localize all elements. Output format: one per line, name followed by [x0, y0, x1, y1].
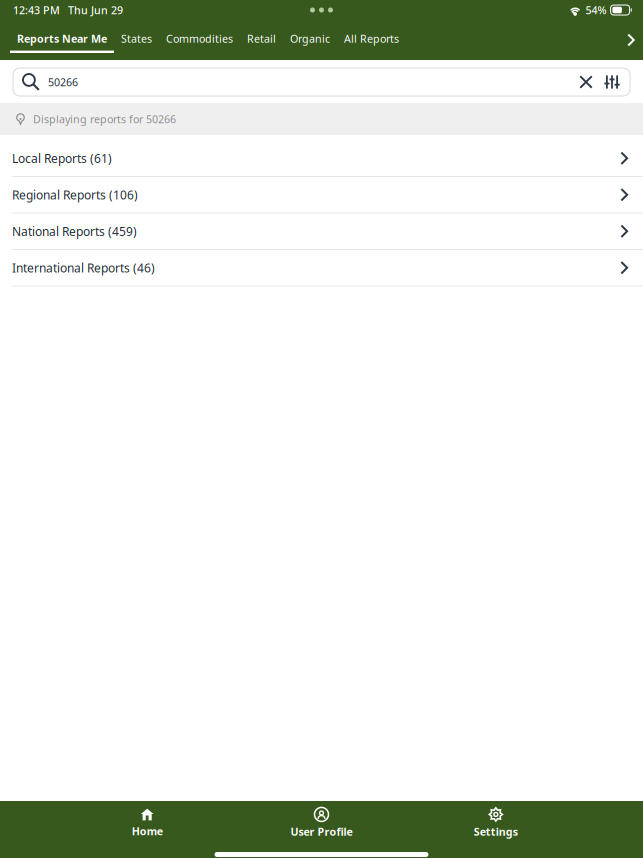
staticText: Regional Reports (106) — [12, 187, 138, 203]
button[interactable]: Settings — [409, 802, 583, 844]
button[interactable]: Clear search — [573, 68, 599, 96]
staticText: Organic — [290, 31, 330, 46]
button[interactable]: Retail — [240, 20, 283, 60]
button[interactable]: More tabs — [619, 20, 643, 60]
button[interactable]: Regional Reports (106) — [0, 177, 643, 213]
staticText: National Reports (459) — [12, 223, 137, 239]
button[interactable]: International Reports (46) — [0, 250, 643, 286]
staticText: 50266 — [48, 75, 78, 89]
staticText: 12:43 PM — [13, 3, 60, 17]
button[interactable]: Organic — [283, 20, 337, 60]
button[interactable]: Reports Near Me — [10, 20, 114, 60]
button[interactable]: All Reports — [337, 20, 406, 60]
button[interactable]: Local Reports (61) — [0, 140, 643, 177]
staticText: Local Reports (61) — [12, 150, 112, 166]
button[interactable]: Commodities — [159, 20, 240, 60]
staticText: States — [121, 31, 152, 46]
button[interactable]: National Reports (459) — [0, 213, 643, 250]
staticText: Retail — [247, 31, 276, 46]
staticText: Displaying reports for 50266 — [33, 112, 176, 126]
button[interactable]: Home — [60, 802, 234, 844]
staticText: Thu Jun 29 — [68, 3, 123, 17]
staticText: All Reports — [344, 31, 399, 46]
button[interactable]: User Profile — [234, 802, 409, 844]
staticText: User Profile — [290, 824, 352, 839]
staticText: Home — [132, 824, 163, 838]
staticText: Commodities — [166, 31, 233, 46]
button[interactable]: Filter — [599, 68, 625, 96]
staticText: 54% — [586, 3, 607, 17]
staticText: Reports Near Me — [17, 31, 107, 46]
staticText: International Reports (46) — [12, 260, 155, 276]
staticText: Settings — [474, 824, 518, 839]
button[interactable]: States — [114, 20, 159, 60]
